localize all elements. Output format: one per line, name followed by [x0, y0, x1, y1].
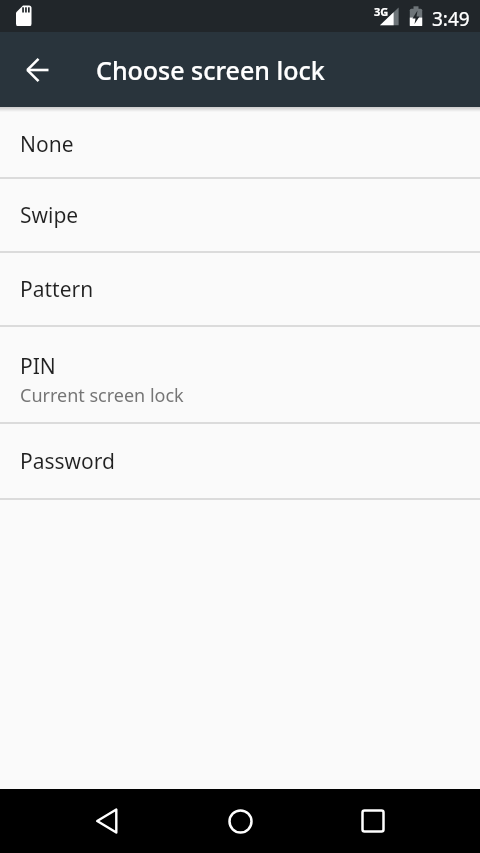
staticText: 3G	[374, 4, 389, 19]
staticText: Choose screen lock	[96, 53, 325, 87]
staticText: Pattern	[20, 275, 94, 304]
button[interactable]: Swipe	[0, 179, 480, 251]
staticText: 3:49	[432, 6, 470, 32]
staticText: Current screen lock	[20, 383, 184, 408]
staticText: Swipe	[20, 201, 79, 230]
button[interactable]	[0, 32, 75, 107]
button[interactable]	[350, 798, 396, 844]
staticText: Password	[20, 447, 115, 476]
button[interactable]	[84, 798, 130, 844]
button[interactable]: None	[0, 112, 480, 177]
staticText: PIN	[20, 352, 56, 381]
staticText: None	[20, 130, 74, 159]
button[interactable]: Pattern	[0, 253, 480, 325]
button[interactable]: PIN	[0, 337, 480, 422]
button[interactable]: Password	[0, 424, 480, 498]
button[interactable]	[217, 798, 263, 844]
